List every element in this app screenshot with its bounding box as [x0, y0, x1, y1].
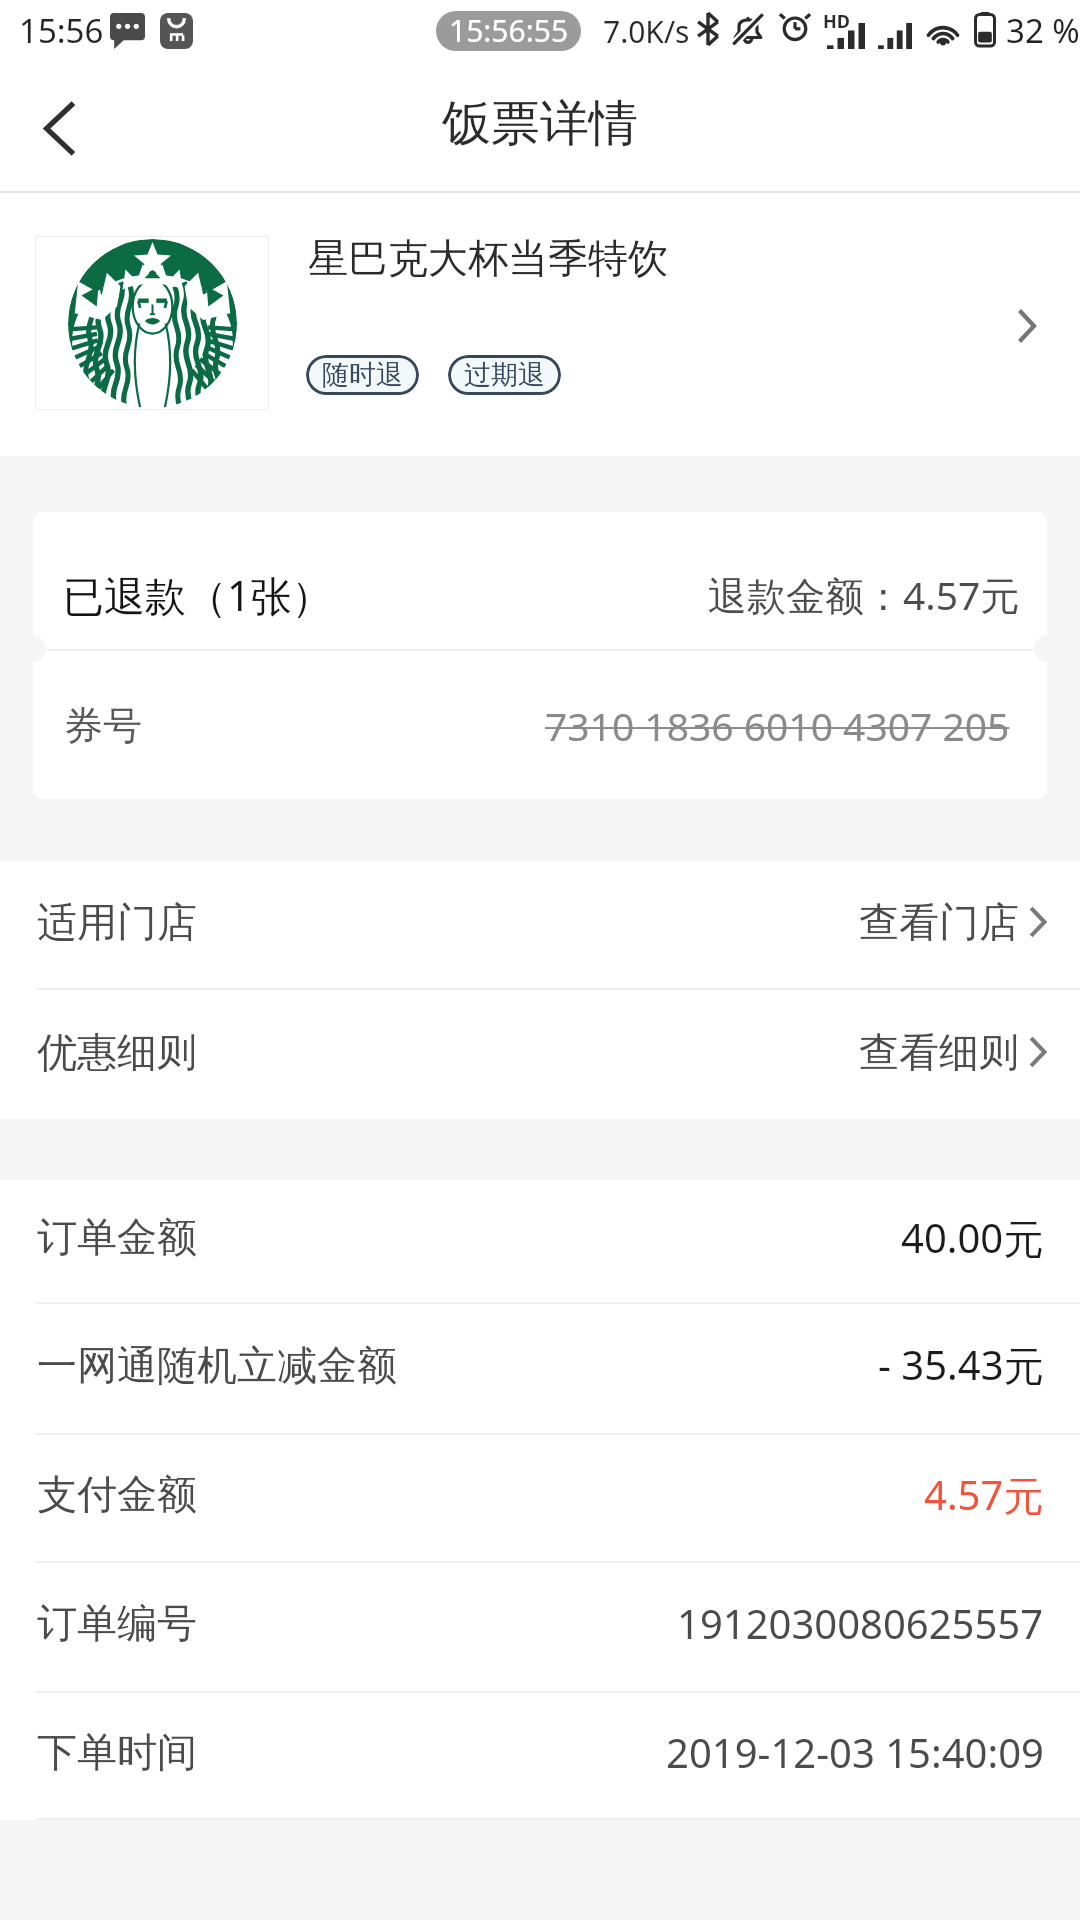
staticText: 订单金额 — [37, 1212, 197, 1262]
staticText: 32 % — [1006, 8, 1080, 53]
staticText: 查看细则 — [859, 1027, 1019, 1077]
staticText: 4.57元 — [924, 1467, 1044, 1522]
staticText: 退款金额：4.57元 — [708, 568, 1020, 621]
button[interactable]: 星巴克大杯当季特饮 — [0, 193, 1080, 456]
staticText: 40.00元 — [901, 1210, 1044, 1265]
staticText: 过期退 — [464, 358, 545, 392]
staticText: 券号 — [64, 701, 142, 750]
staticText: 星巴克大杯当季特饮 — [308, 233, 668, 283]
staticText: HD — [823, 9, 850, 34]
staticText: 查看门店 — [859, 897, 1019, 947]
staticText: 下单时间 — [37, 1727, 197, 1777]
staticText: 7.0K/s — [603, 11, 690, 52]
staticText: 一网通随机立减金额 — [37, 1340, 397, 1390]
staticText: - 35.43元 — [878, 1337, 1044, 1392]
staticText: 饭票详情 — [442, 93, 638, 155]
staticText: 7310 1836 6010 4307 205 — [545, 699, 1010, 752]
button[interactable]: 适用门店 — [0, 861, 1080, 988]
staticText: 15:56 — [19, 8, 104, 53]
staticText: 适用门店 — [37, 897, 197, 947]
staticText: 随时退 — [322, 358, 403, 392]
staticText: 15:56:55 — [449, 11, 569, 50]
staticText: 已退款（1张） — [63, 567, 333, 623]
staticText: 订单编号 — [37, 1598, 197, 1648]
button[interactable]: Back — [0, 60, 116, 193]
staticText: 2019-12-03 15:40:09 — [666, 1725, 1044, 1779]
staticText: 优惠细则 — [37, 1027, 197, 1077]
staticText: 支付金额 — [37, 1469, 197, 1519]
button[interactable]: 优惠细则 — [0, 990, 1080, 1119]
staticText: 1912030080625557 — [677, 1596, 1044, 1650]
button[interactable]: 已退款（1张） — [33, 512, 1047, 799]
